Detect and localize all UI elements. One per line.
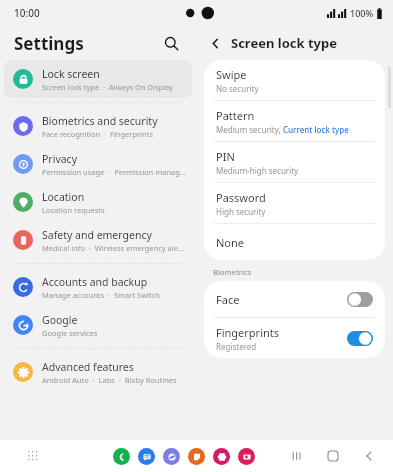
staticText: Screen lock type · Always On Display bbox=[42, 82, 174, 92]
button[interactable]: Apps bbox=[24, 447, 42, 465]
button[interactable]: Advanced features bbox=[4, 353, 192, 391]
button[interactable]: Back bbox=[359, 446, 379, 466]
button[interactable]: Location bbox=[4, 183, 192, 221]
staticText: Advanced features bbox=[42, 360, 134, 374]
button[interactable] bbox=[347, 331, 373, 346]
button[interactable]: flower bbox=[213, 448, 230, 465]
staticText: Privacy bbox=[42, 152, 78, 166]
staticText: Permission usage · Permission manager bbox=[42, 167, 186, 177]
button[interactable]: note bbox=[188, 448, 205, 465]
staticText: Password bbox=[216, 190, 266, 205]
staticText: Medical info · Wireless emergency alerts bbox=[42, 243, 186, 253]
staticText: Manage accounts · Smart Switch bbox=[42, 290, 160, 300]
staticText: Biometrics bbox=[213, 267, 252, 277]
button[interactable]: phone bbox=[113, 448, 130, 465]
staticText: High security bbox=[216, 206, 266, 217]
button[interactable]: Google bbox=[4, 306, 192, 344]
staticText: Pattern bbox=[216, 108, 255, 123]
staticText: Registered bbox=[216, 341, 257, 352]
staticText: 10:00 bbox=[14, 6, 40, 20]
button[interactable]: Search bbox=[158, 30, 184, 56]
staticText: Google bbox=[42, 313, 78, 327]
staticText: Face recognition · Fingerprints bbox=[42, 129, 153, 139]
button[interactable]: None bbox=[204, 224, 385, 260]
staticText: Lock screen bbox=[42, 67, 100, 81]
staticText: Fingerprints bbox=[216, 325, 280, 340]
staticText: Google services bbox=[42, 328, 98, 338]
staticText: 100% bbox=[350, 7, 374, 19]
staticText: Accounts and backup bbox=[42, 275, 148, 289]
button[interactable]: PIN bbox=[204, 142, 385, 182]
staticText: Face bbox=[216, 292, 240, 307]
button[interactable]: Fingerprints bbox=[204, 318, 385, 358]
button[interactable]: Password bbox=[204, 183, 385, 223]
staticText: No security bbox=[216, 83, 259, 94]
button[interactable]: Biometrics and security bbox=[4, 107, 192, 145]
button[interactable]: Privacy bbox=[4, 145, 192, 183]
button[interactable]: internet bbox=[163, 448, 180, 465]
staticText: Settings bbox=[14, 32, 84, 55]
staticText: Android Auto · Labs · Bixby Routines bbox=[42, 375, 177, 385]
staticText: Safety and emergency bbox=[42, 228, 152, 242]
button[interactable]: Home bbox=[323, 446, 343, 466]
button[interactable] bbox=[347, 292, 373, 307]
staticText: PIN bbox=[216, 149, 235, 164]
button[interactable]: Face bbox=[204, 281, 385, 317]
button[interactable]: Recents bbox=[287, 446, 307, 466]
staticText: Screen lock type bbox=[231, 34, 337, 52]
button[interactable]: Safety and emergency bbox=[4, 221, 192, 259]
staticText: Location bbox=[42, 190, 85, 204]
button[interactable]: message bbox=[138, 448, 155, 465]
button[interactable]: Swipe bbox=[204, 60, 385, 100]
button[interactable]: Accounts and backup bbox=[4, 268, 192, 306]
staticText: Medium security, bbox=[216, 124, 283, 135]
button[interactable]: Pattern bbox=[204, 101, 385, 141]
button[interactable]: Lock screen bbox=[4, 60, 192, 98]
staticText: Current lock type bbox=[283, 124, 349, 135]
button[interactable]: camera bbox=[238, 448, 255, 465]
button[interactable]: Back bbox=[204, 32, 226, 54]
staticText: Location requests bbox=[42, 205, 105, 215]
staticText: None bbox=[216, 235, 245, 250]
staticText: Biometrics and security bbox=[42, 114, 158, 128]
staticText: Swipe bbox=[216, 67, 247, 82]
staticText: Medium-high security bbox=[216, 165, 299, 176]
